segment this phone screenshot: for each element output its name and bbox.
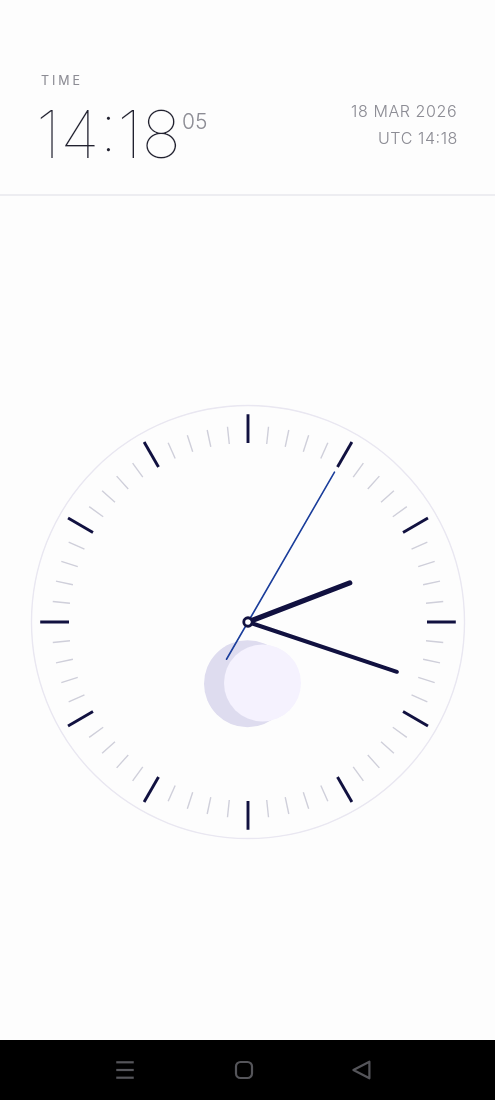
button[interactable]: Back bbox=[340, 1040, 384, 1100]
staticText: 18 MAR 2026 bbox=[351, 101, 458, 120]
staticText: TIME bbox=[41, 73, 83, 88]
button[interactable]: Time 14:18:05 bbox=[0, 0, 495, 196]
staticText: 14:18 bbox=[36, 94, 181, 174]
button[interactable]: Menu bbox=[103, 1040, 147, 1100]
button[interactable]: Analogue clock showing 14:18 bbox=[26, 400, 470, 844]
button[interactable]: Home bbox=[222, 1040, 266, 1100]
staticText: 05 bbox=[182, 109, 208, 134]
staticText: UTC 14:18 bbox=[378, 128, 458, 147]
